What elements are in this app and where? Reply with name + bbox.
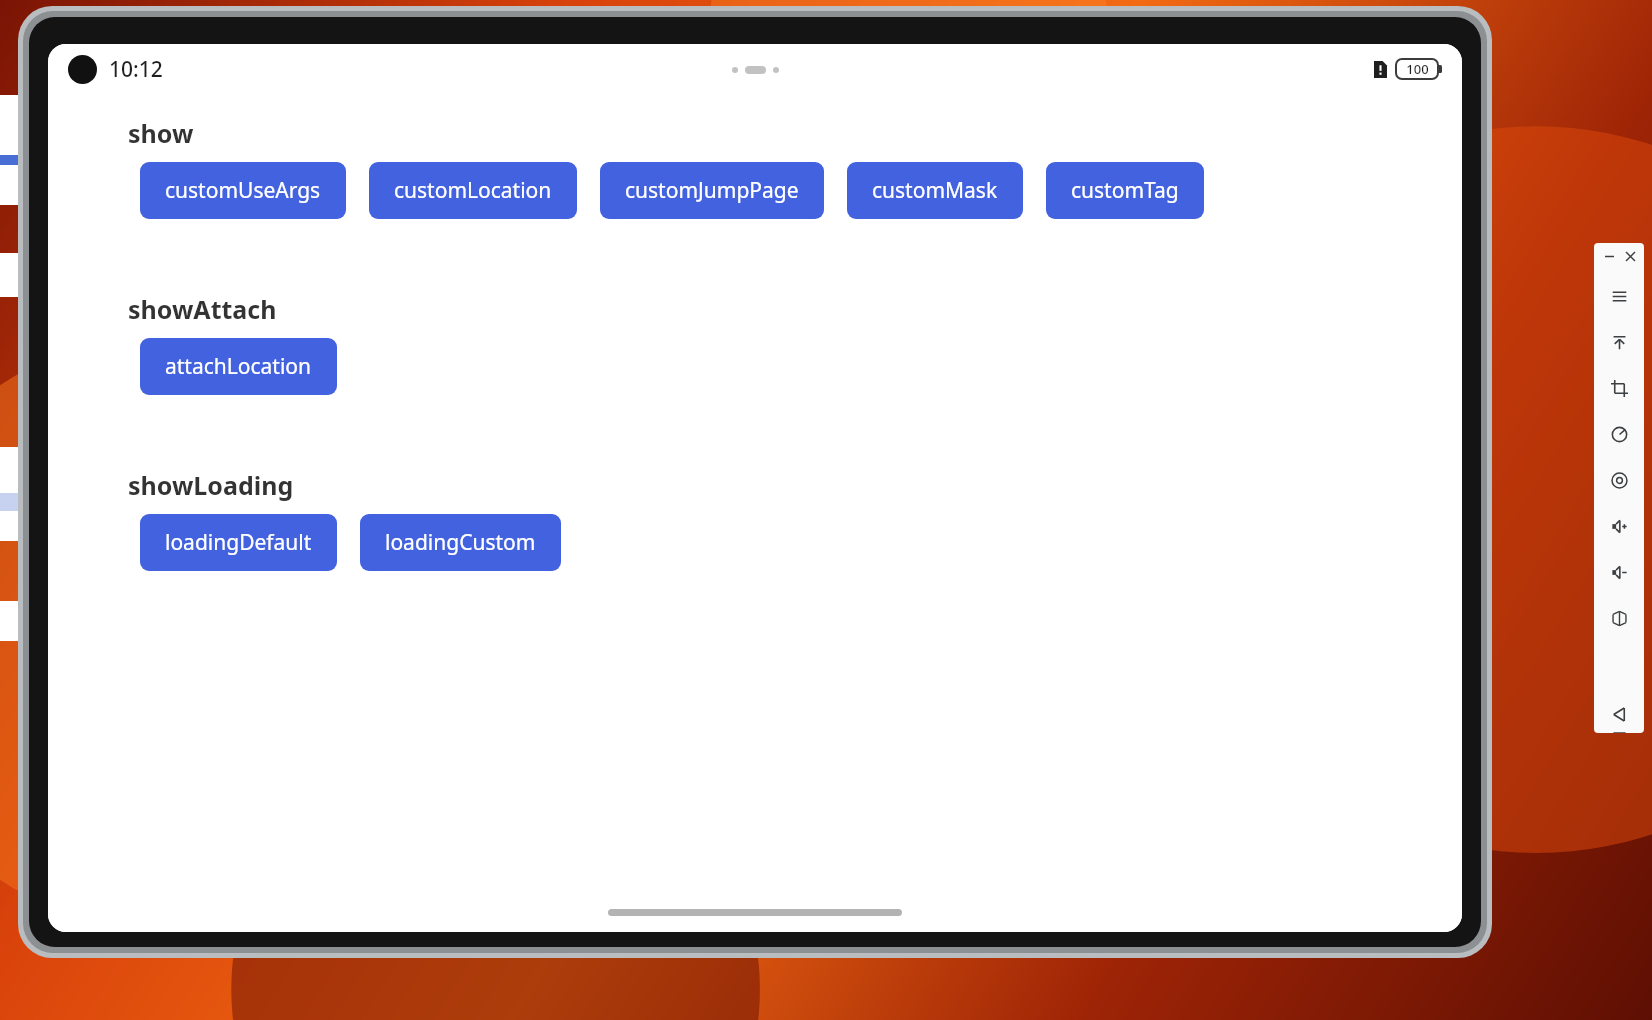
button[interactable]: Back — [1602, 697, 1636, 731]
staticText: loadingCustom — [385, 528, 536, 557]
button[interactable]: Menu — [1602, 279, 1636, 313]
button[interactable]: customTag — [1046, 162, 1204, 219]
button[interactable]: Fold — [1602, 601, 1636, 635]
staticText: customUseArgs — [165, 176, 321, 205]
staticText: showAttach — [128, 292, 277, 326]
button[interactable]: customLocation — [369, 162, 577, 219]
button[interactable]: Close — [1621, 247, 1639, 265]
staticText: 10:12 — [109, 55, 163, 84]
button[interactable]: customMask — [847, 162, 1023, 219]
button[interactable]: Volume down — [1602, 555, 1636, 589]
staticText: show — [128, 116, 194, 150]
button[interactable]: attachLocation — [140, 338, 337, 395]
staticText: customJumpPage — [625, 176, 799, 205]
button[interactable]: loadingCustom — [360, 514, 561, 571]
staticText: customMask — [872, 176, 998, 205]
button[interactable]: Crop — [1602, 371, 1636, 405]
button[interactable]: customJumpPage — [600, 162, 824, 219]
button[interactable]: Minimise — [1600, 247, 1618, 265]
staticText: showLoading — [128, 468, 294, 502]
button[interactable]: Volume up — [1602, 509, 1636, 543]
staticText: attachLocation — [165, 352, 312, 381]
button[interactable]: Upload — [1602, 325, 1636, 359]
staticText: loadingDefault — [165, 528, 312, 557]
button[interactable]: Rotate — [1602, 417, 1636, 451]
staticText: 100 — [1406, 60, 1429, 78]
staticText: customTag — [1071, 176, 1179, 205]
button[interactable]: customUseArgs — [140, 162, 346, 219]
staticText: customLocation — [394, 176, 552, 205]
button[interactable]: loadingDefault — [140, 514, 337, 571]
button[interactable]: Location — [1602, 463, 1636, 497]
